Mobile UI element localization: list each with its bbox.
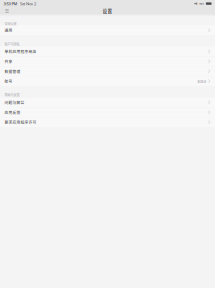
- staticText: 常规设置: [4, 22, 16, 26]
- button[interactable]: Menu: [1, 7, 12, 14]
- button[interactable]: 问题与解答: [0, 98, 215, 107]
- button[interactable]: 账号: [0, 76, 215, 86]
- staticText: 帮助与反馈: [4, 93, 19, 97]
- staticText: 要求应用程序许可: [4, 119, 36, 125]
- staticText: 问题与解答: [4, 100, 24, 105]
- staticText: 账户与隐私: [4, 42, 19, 46]
- staticText: 设置: [102, 8, 112, 14]
- staticText: 通用: [4, 27, 12, 33]
- button[interactable]: 数据管理: [0, 66, 215, 76]
- button[interactable]: 单机应用程序商店: [0, 47, 215, 56]
- staticText: 3:53 PM: [3, 1, 17, 6]
- staticText: 未登录: [197, 79, 206, 84]
- staticText: 共享: [4, 59, 12, 64]
- button[interactable]: 共享: [0, 57, 215, 66]
- staticText: Sat Nov 2: [20, 1, 36, 6]
- button[interactable]: 通用: [0, 25, 215, 35]
- button[interactable]: 要求应用程序许可: [0, 117, 215, 127]
- button[interactable]: 应用反馈: [0, 107, 215, 117]
- staticText: 单机应用程序商店: [4, 49, 36, 54]
- staticText: 应用反馈: [4, 110, 20, 115]
- staticText: 数据管理: [4, 68, 20, 74]
- staticText: 账号: [4, 78, 12, 84]
- staticText: WiFi: [199, 2, 204, 5]
